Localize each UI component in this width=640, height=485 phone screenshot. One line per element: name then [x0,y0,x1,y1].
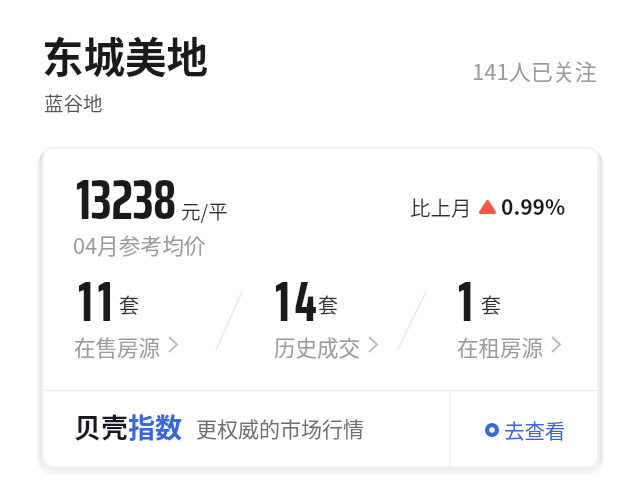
button[interactable]: 贝壳 [60,393,445,467]
staticText: 套 [318,290,338,319]
button[interactable]: 1 [455,257,599,357]
staticText: 蓝谷地 [44,88,103,116]
other: 上涨 [479,200,496,214]
staticText: 去查看 [504,415,566,445]
staticText: 04月参考均价 [73,229,206,260]
button[interactable]: 去查看 [436,397,572,463]
staticText: 在售房源 [74,331,161,362]
staticText: 在租房源 [457,331,544,362]
button[interactable]: 14 [272,257,440,357]
staticText: 历史成交 [274,331,361,362]
staticText: 东城美地 [42,25,209,85]
button[interactable]: 141人已关注 [458,44,610,84]
staticText: 0.99% [501,191,566,221]
staticText: 11 [78,257,118,346]
staticText: 比上月 [410,192,472,222]
staticText: 更权威的市场行情 [196,413,364,443]
staticText: 1 [458,257,478,346]
staticText: 13238 [76,155,177,244]
staticText: 贝壳 [74,407,128,446]
staticText: 指数 [128,407,182,446]
button[interactable]: 11 [72,257,240,357]
staticText: 元/平 [181,196,228,224]
staticText: 套 [481,290,501,319]
staticText: 14 [275,257,322,346]
staticText: 套 [119,290,139,319]
button[interactable]: 东城美地 [32,24,282,116]
staticText: 141人已关注 [472,54,597,86]
